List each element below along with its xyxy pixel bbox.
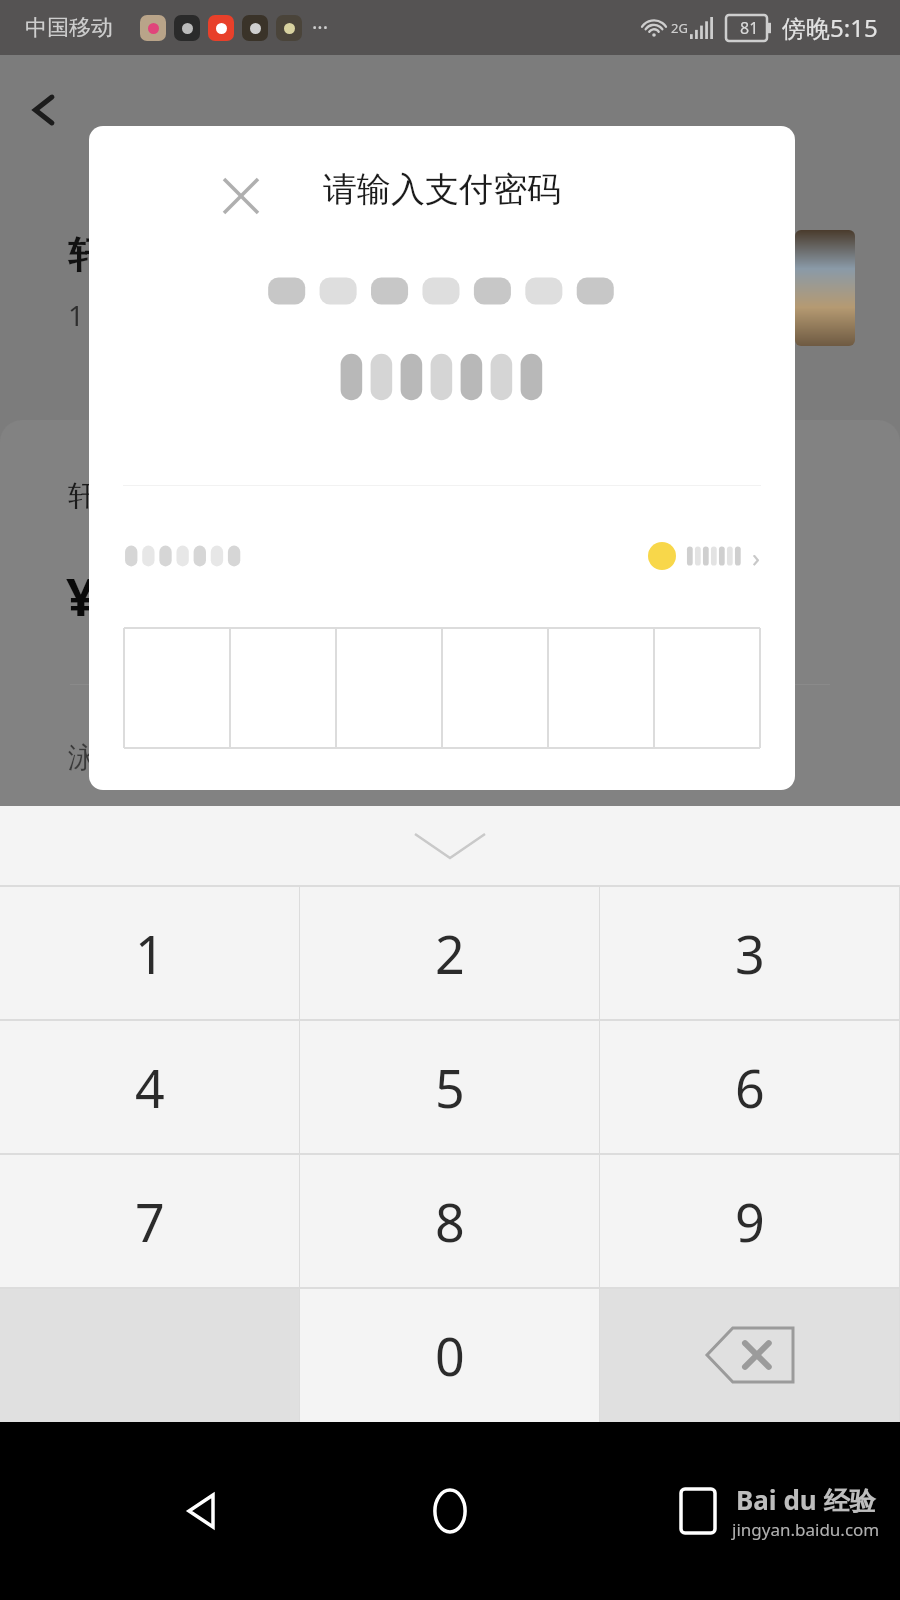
staticText: 中国移动 — [25, 14, 113, 42]
staticText: 泳 — [68, 740, 96, 775]
staticText: 2 — [435, 918, 465, 989]
button[interactable]: 5 — [300, 1020, 600, 1154]
staticText: ¥ — [66, 560, 96, 631]
staticText: 3 — [735, 918, 765, 989]
staticText: 0 — [435, 1320, 465, 1391]
staticText: jingyan.baidu.com — [732, 1518, 880, 1541]
button[interactable]: Back — [158, 1466, 248, 1556]
staticText: 1 — [68, 296, 85, 334]
staticText: 4 — [135, 1052, 165, 1123]
staticText: 9 — [735, 1186, 765, 1257]
button[interactable]: Recents — [653, 1466, 743, 1556]
button[interactable]: 2 — [300, 886, 600, 1020]
staticText: › — [752, 539, 761, 574]
button[interactable]: Close — [213, 168, 269, 224]
button[interactable]: 6 — [600, 1020, 900, 1154]
button[interactable]: 4 — [0, 1020, 300, 1154]
button[interactable]: Hide keyboard — [0, 806, 900, 886]
button[interactable]: 8 — [300, 1154, 600, 1288]
staticText: 7 — [135, 1186, 165, 1257]
staticText: 轩 — [68, 478, 96, 513]
button[interactable] — [654, 628, 760, 748]
staticText: 1 — [135, 918, 165, 989]
other: Backspace — [707, 1328, 793, 1382]
button[interactable]: 1 — [0, 886, 300, 1020]
staticText: 请输 — [78, 876, 146, 919]
staticText: 轩 — [68, 232, 104, 277]
button[interactable]: 3 — [600, 886, 900, 1020]
staticText: 81 — [740, 17, 759, 39]
button[interactable] — [124, 628, 230, 748]
button[interactable]: › — [89, 516, 795, 596]
button[interactable] — [548, 628, 654, 748]
button[interactable]: Home — [405, 1466, 495, 1556]
staticText: 6 — [735, 1052, 765, 1123]
button[interactable] — [336, 628, 442, 748]
button[interactable]: Backspace — [600, 1288, 900, 1422]
staticText: 5 — [435, 1052, 465, 1123]
button[interactable] — [442, 628, 548, 748]
staticText: 请输入支付密码 — [89, 168, 795, 211]
staticText: ··· — [312, 14, 329, 41]
staticText: 确认 — [668, 876, 736, 919]
staticText: 2G — [671, 19, 688, 37]
staticText: 8 — [435, 1186, 465, 1257]
other: Back — [26, 92, 62, 128]
staticText: Bai du 经验 — [736, 1482, 876, 1518]
button[interactable] — [230, 628, 336, 748]
staticText: 傍晚5:15 — [782, 11, 878, 44]
button[interactable]: 0 — [300, 1288, 600, 1422]
button[interactable]: 7 — [0, 1154, 300, 1288]
button[interactable]: 9 — [600, 1154, 900, 1288]
